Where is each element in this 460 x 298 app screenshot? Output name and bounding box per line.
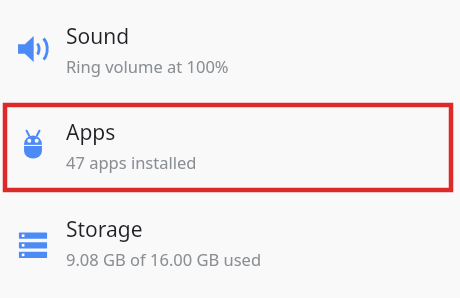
staticText: Sound	[66, 22, 130, 51]
staticText: 47 apps installed	[66, 151, 197, 173]
staticText: Ring volume at 100%	[66, 55, 229, 77]
other: Apps	[0, 98, 66, 192]
staticText: 9.08 GB of 16.00 GB used	[66, 248, 262, 270]
staticText: Apps	[66, 118, 116, 147]
staticText: Storage	[66, 215, 143, 244]
button[interactable]: Storage	[0, 192, 460, 292]
button[interactable]: Apps	[0, 98, 460, 192]
other: Storage	[0, 192, 66, 292]
other: Sound	[0, 0, 66, 98]
button[interactable]: Sound	[0, 0, 460, 98]
